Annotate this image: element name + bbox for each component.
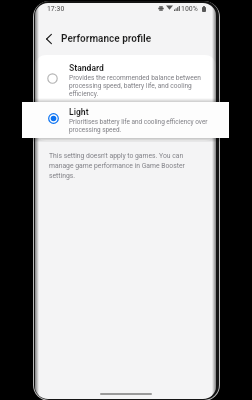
button[interactable]: Light — [22, 102, 229, 138]
staticText: This setting doesn't apply to games. You… — [49, 152, 187, 180]
staticText: 100% — [181, 5, 198, 13]
button[interactable]: Back — [41, 31, 57, 47]
staticText: Performance profile — [61, 33, 152, 45]
button[interactable]: Standard — [35, 55, 216, 141]
staticText: Provides the recommended balance between… — [69, 74, 209, 98]
staticText: 17:30 — [47, 5, 65, 13]
staticText: Light — [69, 107, 89, 117]
staticText: Prioritises battery life and cooling eff… — [69, 118, 211, 134]
staticText: Standard — [69, 63, 104, 73]
